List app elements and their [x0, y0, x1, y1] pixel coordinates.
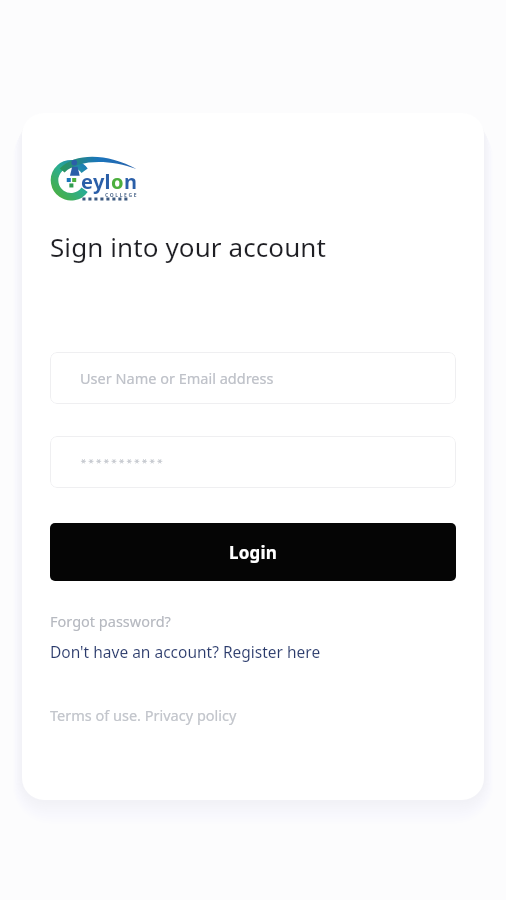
staticText: yl — [93, 168, 111, 195]
other: Ceylon College logo — [50, 150, 158, 206]
button[interactable]: Don't have an account? Register here — [50, 641, 321, 662]
button[interactable]: Login — [50, 523, 456, 581]
staticText: Don't have an account? Register here — [50, 641, 321, 662]
staticText: o — [111, 168, 124, 195]
button[interactable]: Forgot password? — [50, 611, 171, 631]
staticText: Sign into your account — [50, 229, 327, 264]
staticText: Terms of use. Privacy policy — [50, 705, 237, 725]
staticText: n — [124, 168, 137, 195]
staticText: e — [81, 168, 93, 195]
staticText: User Name or Email address — [80, 368, 274, 388]
button[interactable] — [50, 436, 456, 488]
staticText: COLLEGE — [105, 192, 139, 199]
button[interactable]: Terms of use. Privacy policy — [50, 705, 237, 725]
staticText: Login — [229, 541, 278, 564]
staticText: Forgot password? — [50, 611, 171, 631]
button[interactable]: User Name or Email address — [50, 352, 456, 404]
